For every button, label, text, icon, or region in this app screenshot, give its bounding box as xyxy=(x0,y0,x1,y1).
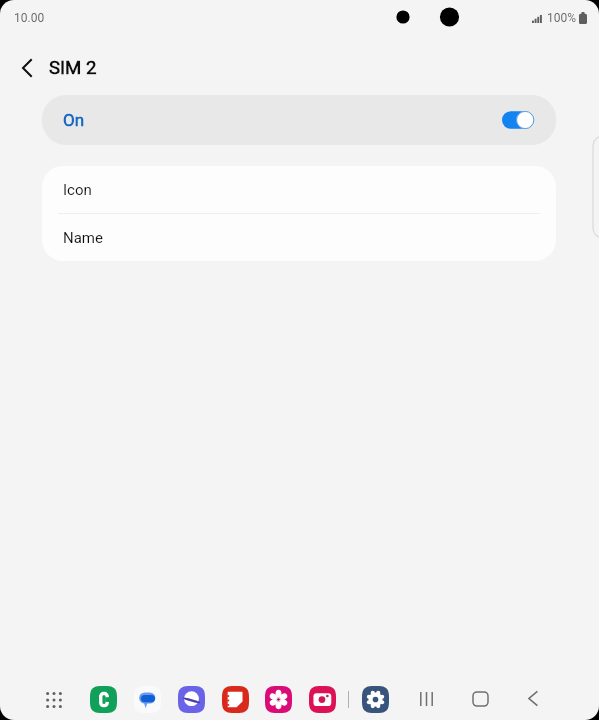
staticText: Name xyxy=(63,229,103,247)
staticText: SIM 2 xyxy=(49,57,97,79)
button[interactable]: Apps xyxy=(39,685,69,715)
button[interactable]: Icon xyxy=(42,166,556,213)
button[interactable]: Notes xyxy=(222,686,249,713)
button[interactable]: Name xyxy=(42,214,556,261)
staticText: 100% xyxy=(547,11,577,25)
button[interactable]: Settings xyxy=(362,686,389,713)
staticText: Icon xyxy=(63,181,92,199)
button[interactable]: Gallery xyxy=(265,686,292,713)
button[interactable]: Recent apps xyxy=(412,685,441,713)
button[interactable]: Home xyxy=(466,685,495,713)
button[interactable]: Phone xyxy=(90,686,117,713)
button[interactable]: Messages xyxy=(134,686,161,713)
button[interactable]: Internet xyxy=(178,686,205,713)
button[interactable]: On xyxy=(42,95,556,145)
button[interactable]: Camera xyxy=(309,686,336,713)
staticText: 10.00 xyxy=(14,11,45,25)
staticText: On xyxy=(63,110,85,130)
button[interactable]: Navigate up xyxy=(9,50,45,86)
button[interactable]: Back xyxy=(520,685,547,712)
